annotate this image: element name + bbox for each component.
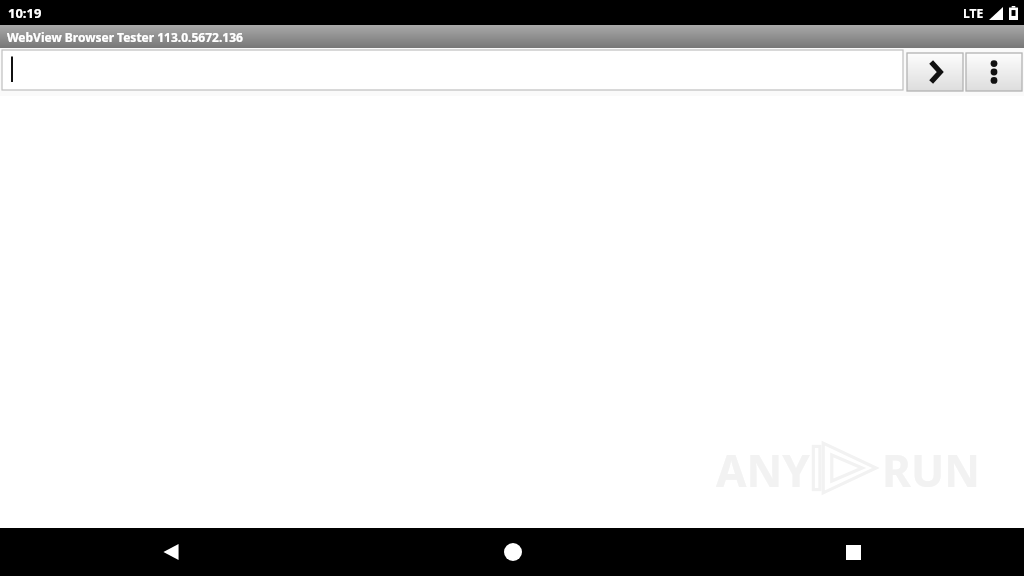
staticText: 10:19 — [8, 4, 42, 22]
button[interactable]: Recent apps — [683, 528, 1024, 576]
staticText: RUN — [882, 440, 980, 496]
staticText: LTE — [963, 5, 984, 21]
button[interactable]: Home — [342, 528, 683, 576]
button[interactable] — [2, 50, 903, 90]
button[interactable]: Go — [907, 53, 963, 91]
staticText: WebView Browser Tester 113.0.5672.136 — [7, 29, 243, 45]
staticText: ANY — [716, 440, 810, 496]
button[interactable]: More options — [966, 53, 1022, 91]
button[interactable]: Back — [0, 528, 342, 576]
